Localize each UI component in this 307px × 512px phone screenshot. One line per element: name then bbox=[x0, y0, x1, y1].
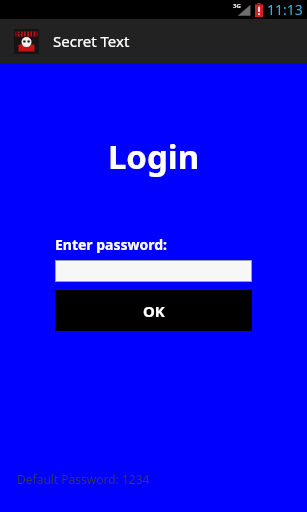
staticText: Enter password: bbox=[55, 235, 168, 254]
staticText: Secret Text bbox=[53, 31, 130, 51]
staticText: 11:13 bbox=[267, 0, 303, 19]
staticText: 3G bbox=[233, 2, 241, 10]
staticText: Default Password: 1234 bbox=[17, 471, 150, 487]
button[interactable] bbox=[55, 260, 252, 282]
staticText: OK bbox=[143, 301, 165, 321]
button[interactable]: OK bbox=[55, 290, 252, 331]
staticText: Login bbox=[0, 134, 307, 179]
